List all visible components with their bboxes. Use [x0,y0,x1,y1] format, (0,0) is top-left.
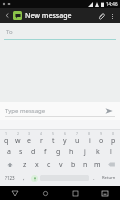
staticText: ?123 [5,175,15,181]
staticText: p [111,136,116,145]
button[interactable]: x [31,158,43,171]
button[interactable]: Type message [5,107,103,115]
staticText: l [110,147,112,157]
button[interactable]: a [3,145,15,158]
button[interactable]: m [91,158,103,171]
button[interactable]: Voice input [28,171,40,185]
staticText: k [96,147,100,157]
button[interactable]: d [27,145,39,158]
staticText: 9 [100,131,103,136]
staticText: q [4,136,9,145]
button[interactable]: Hide keyboard [90,186,120,200]
button[interactable]: Attach [95,10,107,22]
button[interactable]: , [19,171,28,185]
staticText: 6 [64,131,67,136]
staticText: v [59,160,63,170]
button[interactable]: c [43,158,55,171]
staticText: b [71,160,76,170]
staticText: d [31,147,36,157]
staticText: Return [102,175,116,181]
button[interactable]: Shift [1,158,18,171]
staticText: r [40,136,43,145]
button[interactable]: Navigate up [3,11,12,20]
staticText: u [75,136,80,145]
button[interactable]: Home [30,186,60,200]
button[interactable]: Delete [103,158,119,171]
staticText: 4 [40,131,43,136]
staticText: 14:46 [106,1,118,7]
button[interactable]: More options [107,11,117,21]
staticText: . [93,174,95,182]
button[interactable]: g [52,145,65,158]
staticText: 8 [88,131,91,136]
staticText: x [35,160,39,170]
staticText: To [6,28,13,36]
staticText: a [7,147,11,157]
staticText: f [44,147,47,157]
staticText: j [84,147,86,157]
staticText: t [52,136,55,145]
staticText: c [47,160,51,170]
button[interactable]: 8 [83,131,95,145]
staticText: 3 [28,131,31,136]
staticText: h [69,147,74,157]
button[interactable]: s [15,145,27,158]
button[interactable]: 5 [47,131,59,145]
button[interactable]: 4 [35,131,47,145]
staticText: 7 [76,131,79,136]
button[interactable]: j [78,145,91,158]
staticText: e [27,136,31,145]
staticText: g [56,147,61,157]
button[interactable]: 9 [95,131,107,145]
button[interactable]: 0 [107,131,119,145]
staticText: 2 [17,131,20,136]
staticText: y [63,136,67,145]
button[interactable]: n [79,158,91,171]
button[interactable]: . [89,171,98,185]
staticText: s [19,147,23,157]
button[interactable]: ?123 [1,171,19,185]
button[interactable]: 7 [71,131,83,145]
button[interactable]: k [91,145,104,158]
button[interactable]: 6 [59,131,71,145]
button[interactable]: f [39,145,52,158]
staticText: 0 [112,131,115,136]
staticText: 1 [5,131,8,136]
button[interactable]: Back [0,186,30,200]
staticText: n [83,160,88,170]
button[interactable]: h [65,145,78,158]
button[interactable]: z [18,158,31,171]
staticText: Type message [5,107,46,115]
button[interactable]: 2 [12,131,23,145]
staticText: 5 [52,131,55,136]
staticText: New message [25,11,72,21]
button[interactable]: v [55,158,67,171]
button[interactable]: Send [103,105,115,117]
button[interactable]: 3 [23,131,35,145]
button[interactable]: Return [98,171,119,185]
staticText: m [94,160,101,170]
staticText: w [15,136,21,145]
button[interactable]: Recents [60,186,90,200]
staticText: o [99,136,104,145]
staticText: i [89,136,91,145]
button[interactable]: 1 [1,131,12,145]
staticText: , [23,174,25,182]
button[interactable]: b [67,158,79,171]
staticText: z [23,160,27,170]
button[interactable]: l [104,145,117,158]
